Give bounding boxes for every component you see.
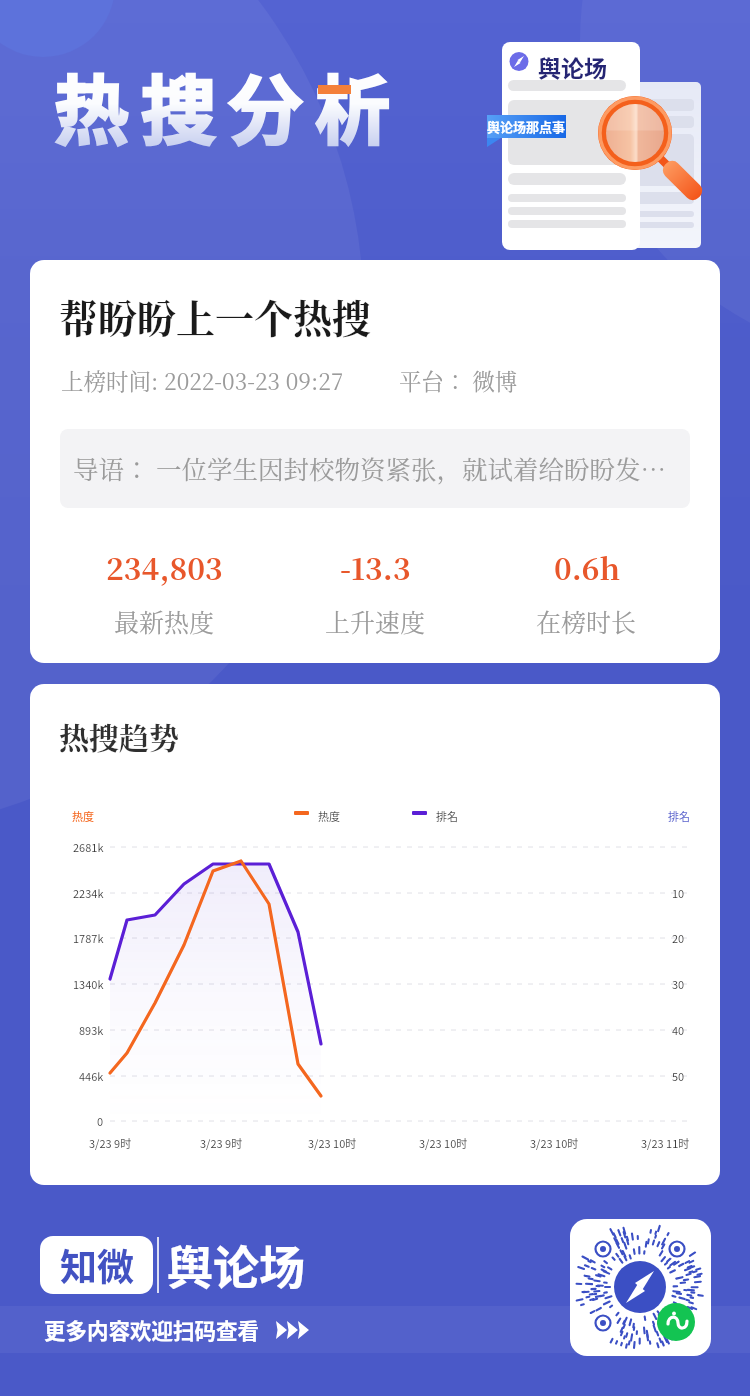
staticText: 3/23 10时 <box>308 1135 357 1151</box>
staticText: 0 <box>97 1113 104 1129</box>
staticText: -13.3 <box>340 545 411 588</box>
staticText: 40 <box>672 1022 685 1038</box>
staticText: 20 <box>672 930 685 946</box>
staticText: 0.6h <box>554 545 620 588</box>
button[interactable]: Scan QR code <box>570 1219 711 1356</box>
staticText: 3/23 11时 <box>641 1135 690 1151</box>
staticText: 排名 <box>436 808 458 824</box>
staticText: 平台： 微博 <box>399 364 518 396</box>
staticText: 导语： 一位学生因封校物资紧张，就试着给盼盼发… <box>73 450 667 487</box>
staticText: 446k <box>79 1068 104 1084</box>
staticText: 50 <box>672 1068 685 1084</box>
staticText: 在榜时长 <box>536 603 637 639</box>
staticText: 舆论场 <box>538 50 607 83</box>
staticText: 舆论场 <box>167 1231 305 1293</box>
staticText: 舆论场那点事 <box>487 117 566 136</box>
staticText: 热度 <box>318 808 340 824</box>
staticText: 3/23 10时 <box>530 1135 579 1151</box>
button[interactable]: 帮盼盼上一个热搜 <box>30 260 720 663</box>
button[interactable]: 0.6h <box>481 545 692 639</box>
staticText: 热搜分析 <box>54 51 403 160</box>
staticText: 上榜时间: 2022-03-23 09:27 <box>61 364 344 396</box>
button[interactable]: 更多内容欢迎扫码查看 <box>40 1307 330 1352</box>
staticText: 1340k <box>73 976 104 992</box>
staticText: 234,803 <box>106 545 223 588</box>
button[interactable]: 234,803 <box>58 545 270 639</box>
staticText: 上升速度 <box>325 603 426 639</box>
button[interactable]: 热搜趋势 <box>30 684 720 1185</box>
staticText: 3/23 10时 <box>419 1135 468 1151</box>
staticText: 3/23 9时 <box>200 1135 243 1151</box>
staticText: 30 <box>672 976 685 992</box>
staticText: 更多内容欢迎扫码查看 <box>44 1314 260 1345</box>
staticText: 最新热度 <box>114 603 215 639</box>
staticText: 3/23 9时 <box>89 1135 132 1151</box>
staticText: 热搜趋势 <box>59 714 179 757</box>
button[interactable]: -13.3 <box>270 545 481 639</box>
staticText: 排名 <box>668 808 690 824</box>
staticText: 热度 <box>72 808 94 824</box>
staticText: 893k <box>79 1022 104 1038</box>
staticText: 2681k <box>73 839 104 855</box>
staticText: 知微 <box>60 1238 134 1292</box>
staticText: 帮盼盼上一个热搜 <box>59 288 372 344</box>
staticText: 10 <box>672 885 685 901</box>
staticText: 2234k <box>73 885 104 901</box>
staticText: 1787k <box>73 930 104 946</box>
